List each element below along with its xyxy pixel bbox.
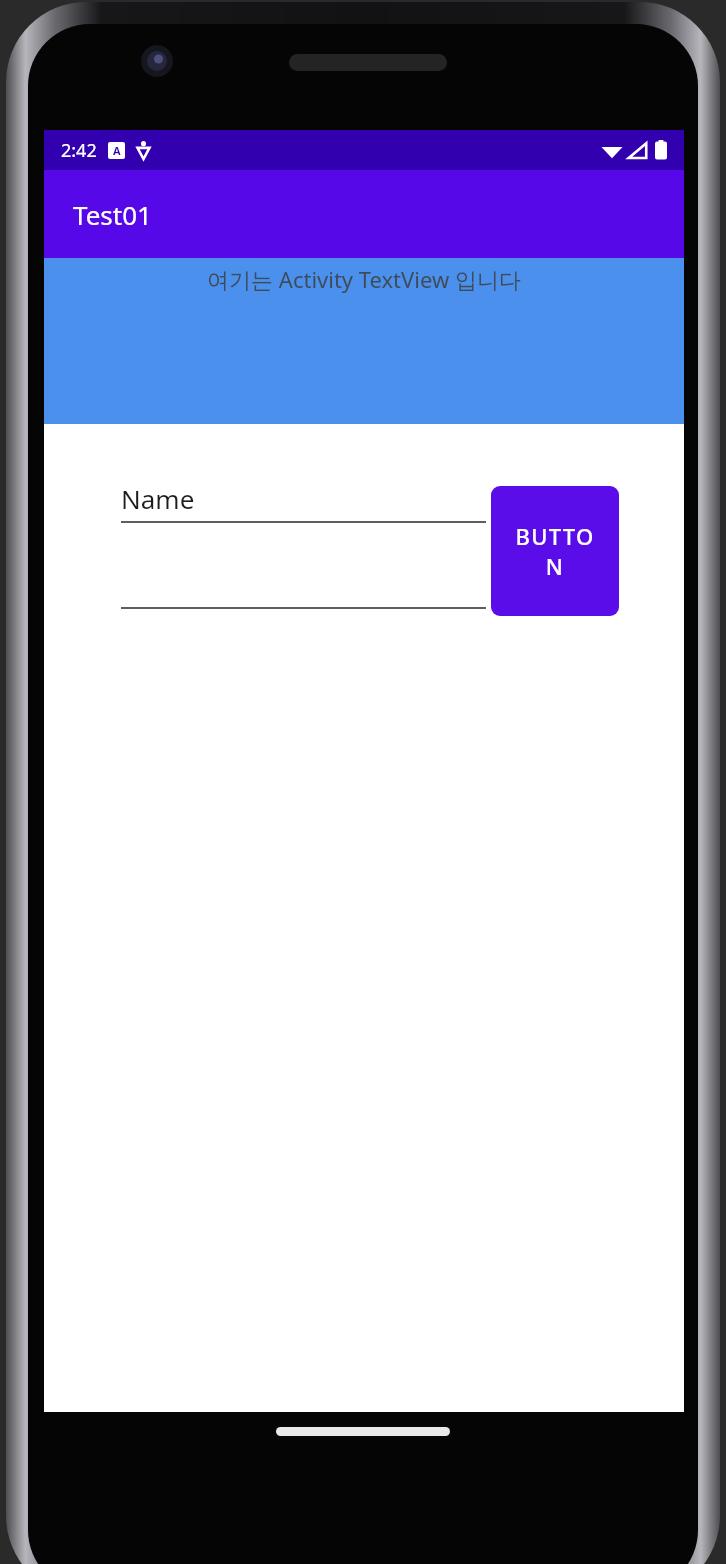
staticText: Test01 bbox=[73, 197, 152, 232]
staticText: Name bbox=[121, 481, 195, 516]
staticText: A bbox=[113, 143, 121, 158]
staticText: 2:42 bbox=[61, 138, 97, 163]
staticText: BUTTON bbox=[511, 521, 599, 581]
button[interactable]: BUTTON bbox=[491, 486, 619, 616]
button[interactable] bbox=[121, 563, 486, 609]
staticText: 여기는 Activity TextView 입니다 bbox=[207, 264, 521, 294]
button[interactable]: Name bbox=[121, 481, 486, 523]
